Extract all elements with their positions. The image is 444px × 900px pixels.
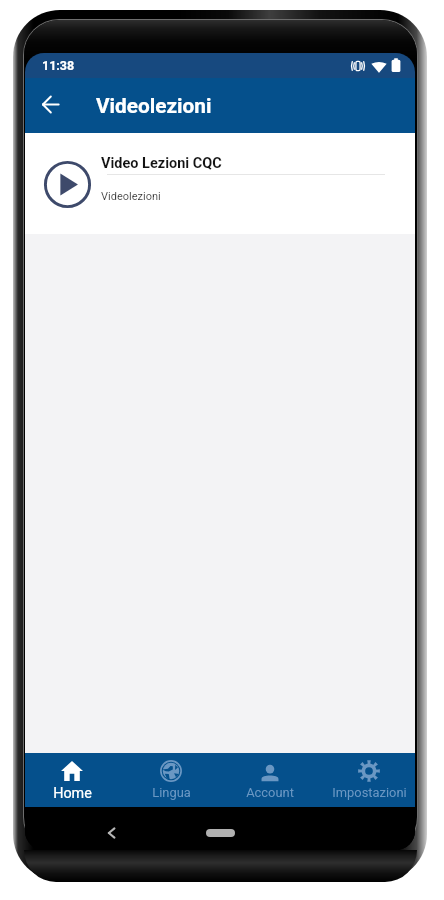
staticText: Video Lezioni CQC <box>101 155 222 172</box>
button[interactable]: Video Lezioni CQC <box>25 133 415 234</box>
staticText: 11:38 <box>42 58 75 73</box>
button[interactable]: Back <box>96 818 126 848</box>
button[interactable]: Home <box>25 753 121 807</box>
staticText: Account <box>246 785 294 800</box>
staticText: Videolezioni <box>101 190 161 203</box>
staticText: Videolezioni <box>96 94 212 118</box>
button[interactable]: Impostazioni <box>320 753 415 807</box>
staticText: Lingua <box>152 785 191 800</box>
button[interactable]: Account <box>221 753 319 807</box>
button[interactable]: Lingua <box>122 753 220 807</box>
staticText: Impostazioni <box>332 785 407 800</box>
button[interactable]: Back <box>31 85 69 123</box>
staticText: Home <box>53 785 92 802</box>
button[interactable]: Home <box>206 829 235 837</box>
